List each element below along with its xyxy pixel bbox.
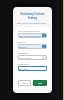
other: Open dropdown: [42, 34, 46, 38]
other: Open dropdown: [42, 45, 46, 49]
staticText: Select Target: [18, 52, 29, 54]
button[interactable]: Select a valid dictionary entry: [18, 33, 47, 38]
staticText: Existing Agreement Setting: [18, 30, 40, 32]
staticText: Select a valid dictionary entry: [19, 35, 41, 37]
staticText: Hierarchy: [18, 41, 26, 43]
button[interactable]: Choose a target: [18, 55, 47, 60]
staticText: Enter value: [19, 68, 28, 70]
staticText: Dictionary Content Setting: [17, 12, 48, 20]
button[interactable]: Save: [33, 80, 47, 86]
button[interactable]: Dictionary: [18, 44, 47, 49]
staticText: Choose a target: [19, 57, 31, 59]
other: Open dropdown: [42, 56, 46, 60]
button[interactable]: Enter value: [18, 66, 47, 71]
staticText: Enter values for any applicable fields.: [17, 22, 47, 24]
staticText: Content Value: [18, 63, 30, 65]
staticText: Cancel: [22, 82, 28, 85]
staticText: Dictionary: [19, 46, 27, 48]
staticText: Save: [38, 82, 43, 85]
button[interactable]: Dictionary Content Setting: [15, 12, 50, 20]
button[interactable]: Cancel: [18, 80, 31, 86]
